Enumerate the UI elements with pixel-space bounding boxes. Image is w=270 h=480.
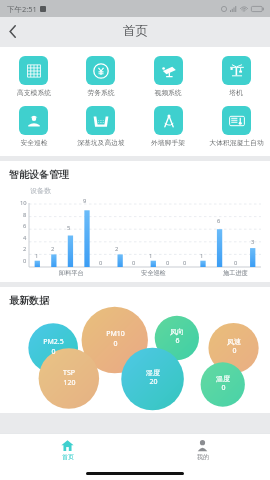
staticText: 首页: [62, 453, 74, 461]
staticText: 0: [113, 339, 118, 349]
staticText: PM2.5: [43, 337, 64, 347]
staticText: 5: [67, 224, 71, 232]
staticText: 9: [83, 197, 87, 204]
staticText: 0: [183, 259, 187, 267]
button[interactable]: 视频系统: [134, 54, 202, 99]
button[interactable]: Back: [0, 18, 26, 44]
staticText: 最新数据: [9, 294, 49, 307]
staticText: 2: [23, 245, 27, 253]
staticText: 6: [175, 336, 180, 346]
staticText: 1: [200, 252, 204, 260]
staticText: 外墙脚手架: [151, 138, 185, 147]
staticText: 0: [234, 259, 238, 267]
staticText: 风向: [170, 327, 184, 336]
staticText: TSP: [63, 368, 75, 378]
staticText: 0: [132, 259, 136, 267]
staticText: 卸料平台: [59, 269, 84, 277]
staticText: 1: [149, 252, 153, 260]
staticText: 温度: [216, 374, 230, 383]
button[interactable]: 劳务系统: [67, 54, 134, 99]
staticText: 120: [63, 378, 76, 388]
staticText: 劳务系统: [87, 88, 115, 97]
staticText: 10: [20, 199, 27, 207]
staticText: 3: [251, 238, 255, 246]
button[interactable]: 塔机: [202, 54, 270, 99]
staticText: PM10: [106, 329, 125, 339]
staticText: 20: [149, 377, 158, 387]
staticText: 6: [23, 222, 27, 230]
staticText: 高支模系统: [17, 88, 51, 97]
staticText: 安全巡检: [141, 269, 166, 277]
button[interactable]: 我的: [135, 439, 270, 461]
staticText: 深基坑及高边坡: [77, 138, 125, 147]
button[interactable]: 大体积混凝土自动: [202, 104, 270, 149]
staticText: 6: [217, 217, 221, 225]
staticText: 大体积混凝土自动: [209, 138, 264, 147]
staticText: 下午2:51: [7, 4, 37, 14]
staticText: 施工进度: [223, 269, 248, 277]
staticText: 视频系统: [154, 88, 182, 97]
button[interactable]: 深基坑及高边坡: [67, 104, 134, 149]
staticText: 塔机: [229, 88, 243, 97]
staticText: 2: [51, 245, 55, 253]
staticText: 我的: [197, 453, 209, 461]
staticText: 0: [232, 346, 237, 356]
button[interactable]: 首页: [0, 439, 135, 461]
button[interactable]: 外墙脚手架: [134, 104, 202, 149]
staticText: 湿度: [146, 368, 160, 377]
staticText: 智能设备管理: [9, 168, 69, 181]
staticText: 0: [23, 257, 27, 265]
staticText: 0: [221, 383, 226, 393]
button[interactable]: 安全巡检: [0, 104, 67, 149]
staticText: 风速: [227, 337, 241, 346]
staticText: 8: [23, 211, 27, 219]
staticText: 设备数: [30, 186, 51, 195]
staticText: 0: [166, 259, 170, 267]
staticText: 安全巡检: [20, 138, 48, 147]
staticText: 4: [23, 234, 27, 242]
staticText: 首页: [123, 23, 148, 39]
staticText: 0: [99, 259, 103, 267]
staticText: 2: [115, 245, 119, 253]
button[interactable]: 高支模系统: [0, 54, 67, 99]
staticText: 1: [35, 252, 39, 260]
staticText: 0: [51, 347, 56, 357]
